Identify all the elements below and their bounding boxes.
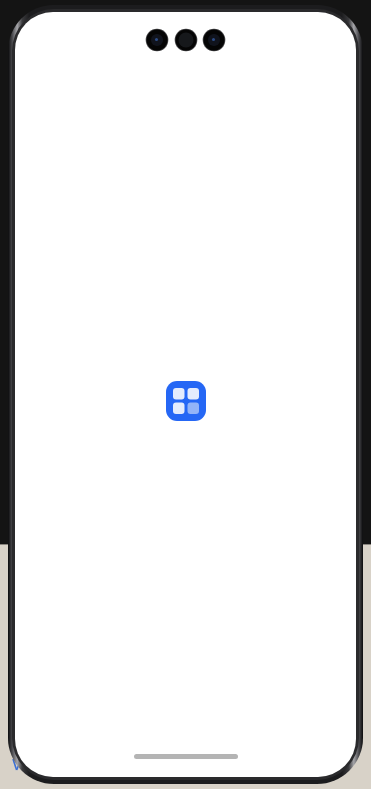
button[interactable]: Apps xyxy=(166,381,206,421)
button[interactable]: Home xyxy=(134,754,238,759)
